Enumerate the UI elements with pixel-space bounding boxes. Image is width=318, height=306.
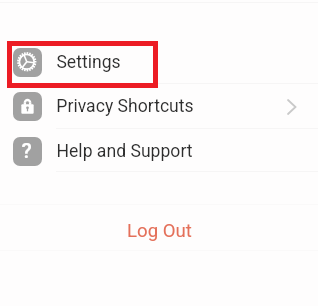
other: Open Privacy Shortcuts [287, 99, 297, 115]
staticText: Settings [56, 52, 121, 73]
staticText: ? [21, 139, 32, 164]
staticText: Help and Support [56, 141, 193, 162]
button[interactable]: Privacy Shortcuts [0, 84, 318, 129]
button[interactable]: Settings [0, 40, 318, 85]
staticText: Log Out [127, 220, 192, 242]
staticText: Privacy Shortcuts [56, 96, 194, 117]
button[interactable]: Log Out [0, 207, 318, 255]
button[interactable]: ? [0, 129, 318, 174]
